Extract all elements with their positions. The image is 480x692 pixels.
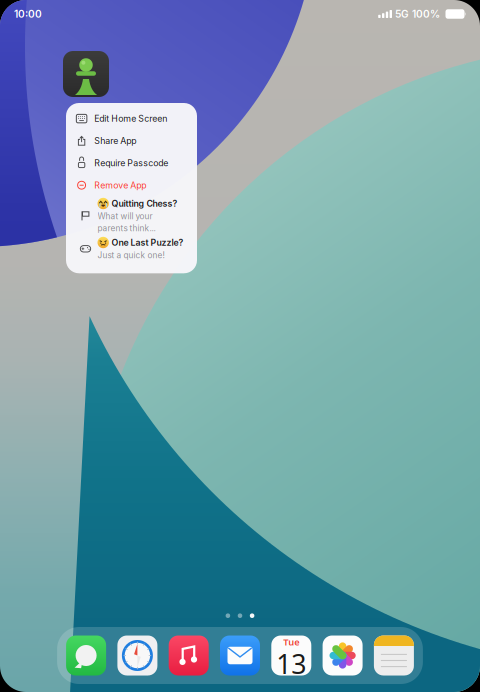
staticText: Edit Home Screen [94,113,167,124]
button[interactable]: Messages [66,635,106,675]
staticText: parents think... [97,223,155,233]
button[interactable]: Mail [220,635,260,675]
staticText: Just a quick one! [97,250,164,260]
staticText: 13 [276,646,306,681]
button[interactable]: Edit Home Screen [66,107,197,130]
staticText: Tue [283,636,299,648]
staticText: Share App [94,135,136,146]
staticText: Require Passcode [94,158,168,168]
staticText: One Last Puzzle? [111,237,183,248]
staticText: What will your [97,211,152,221]
button[interactable]: Quitting Chess? [66,196,196,235]
button[interactable]: Photos [323,635,363,675]
button[interactable]: Chess [63,51,109,97]
button[interactable]: Notes [374,635,414,675]
staticText: 10:00 [14,8,42,20]
button[interactable]: Safari [117,635,157,675]
button[interactable]: Calendar [271,635,311,675]
button[interactable]: One Last Puzzle? [66,235,196,263]
button[interactable]: Remove App [66,174,197,196]
staticText: Remove App [94,180,146,190]
button[interactable]: Share App [66,130,197,152]
staticText: 5G 100% [392,8,440,20]
button[interactable]: Music [169,635,209,675]
button[interactable]: Require Passcode [66,152,197,174]
staticText: Quitting Chess? [111,198,177,209]
